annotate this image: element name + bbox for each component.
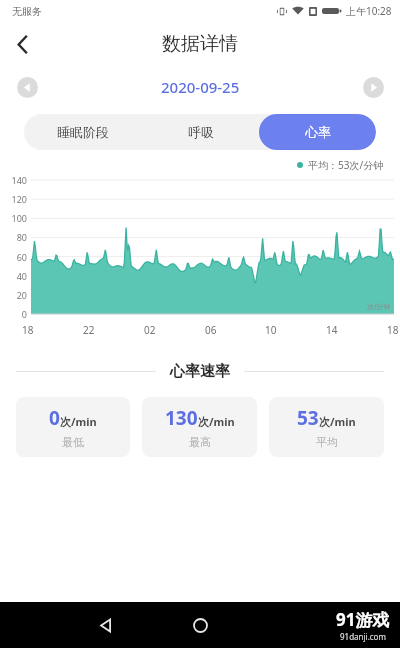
staticText: 91游戏 — [336, 608, 390, 631]
staticText: 平均 — [316, 435, 338, 449]
staticText: 140 — [0, 174, 27, 186]
staticText: 120 — [0, 193, 27, 205]
staticText: 0 — [49, 405, 60, 431]
staticText: 60 — [0, 251, 27, 263]
button[interactable]: Home — [180, 605, 220, 645]
button[interactable]: Back — [86, 605, 126, 645]
button[interactable]: 130 — [142, 397, 257, 457]
staticText: 最低 — [62, 435, 84, 449]
staticText: 100 — [0, 212, 27, 224]
staticText: 数据详情 — [162, 32, 238, 56]
staticText: 2020-09-25 — [161, 77, 240, 97]
staticText: 无服务 — [12, 5, 42, 18]
staticText: 22 — [83, 323, 95, 337]
staticText: 18 — [387, 323, 399, 337]
button[interactable]: 53 — [269, 397, 384, 457]
staticText: 80 — [0, 231, 27, 243]
staticText: 14 — [326, 323, 338, 337]
staticText: 最高 — [189, 435, 211, 449]
staticText: 次/分钟 — [367, 302, 391, 312]
staticText: 02 — [144, 323, 156, 337]
button[interactable]: 呼吸 — [142, 114, 259, 150]
staticText: 睡眠阶段 — [57, 124, 109, 140]
button[interactable]: 心率 — [259, 114, 376, 150]
staticText: 91danji.com — [340, 631, 386, 642]
staticText: 18 — [22, 323, 34, 337]
button[interactable]: 睡眠阶段 — [24, 114, 142, 150]
staticText: 心率速率 — [170, 362, 230, 381]
button[interactable]: Previous day — [13, 73, 41, 101]
staticText: 平均：53次/分钟 — [308, 158, 384, 172]
staticText: 心率 — [305, 124, 331, 140]
staticText: 130 — [165, 405, 198, 431]
staticText: 次/min — [60, 414, 97, 429]
staticText: 呼吸 — [188, 124, 214, 140]
staticText: 上午10:28 — [346, 4, 392, 18]
staticText: 20 — [0, 289, 27, 301]
button[interactable]: Back — [4, 25, 42, 63]
staticText: 次/min — [198, 414, 235, 429]
staticText: 53 — [297, 405, 319, 431]
button[interactable]: Next day — [359, 73, 387, 101]
button[interactable]: 0 — [16, 397, 130, 457]
staticText: 次/min — [319, 414, 356, 429]
staticText: 0 — [0, 308, 27, 320]
staticText: 10 — [265, 323, 277, 337]
staticText: 06 — [205, 323, 217, 337]
staticText: 40 — [0, 270, 27, 282]
